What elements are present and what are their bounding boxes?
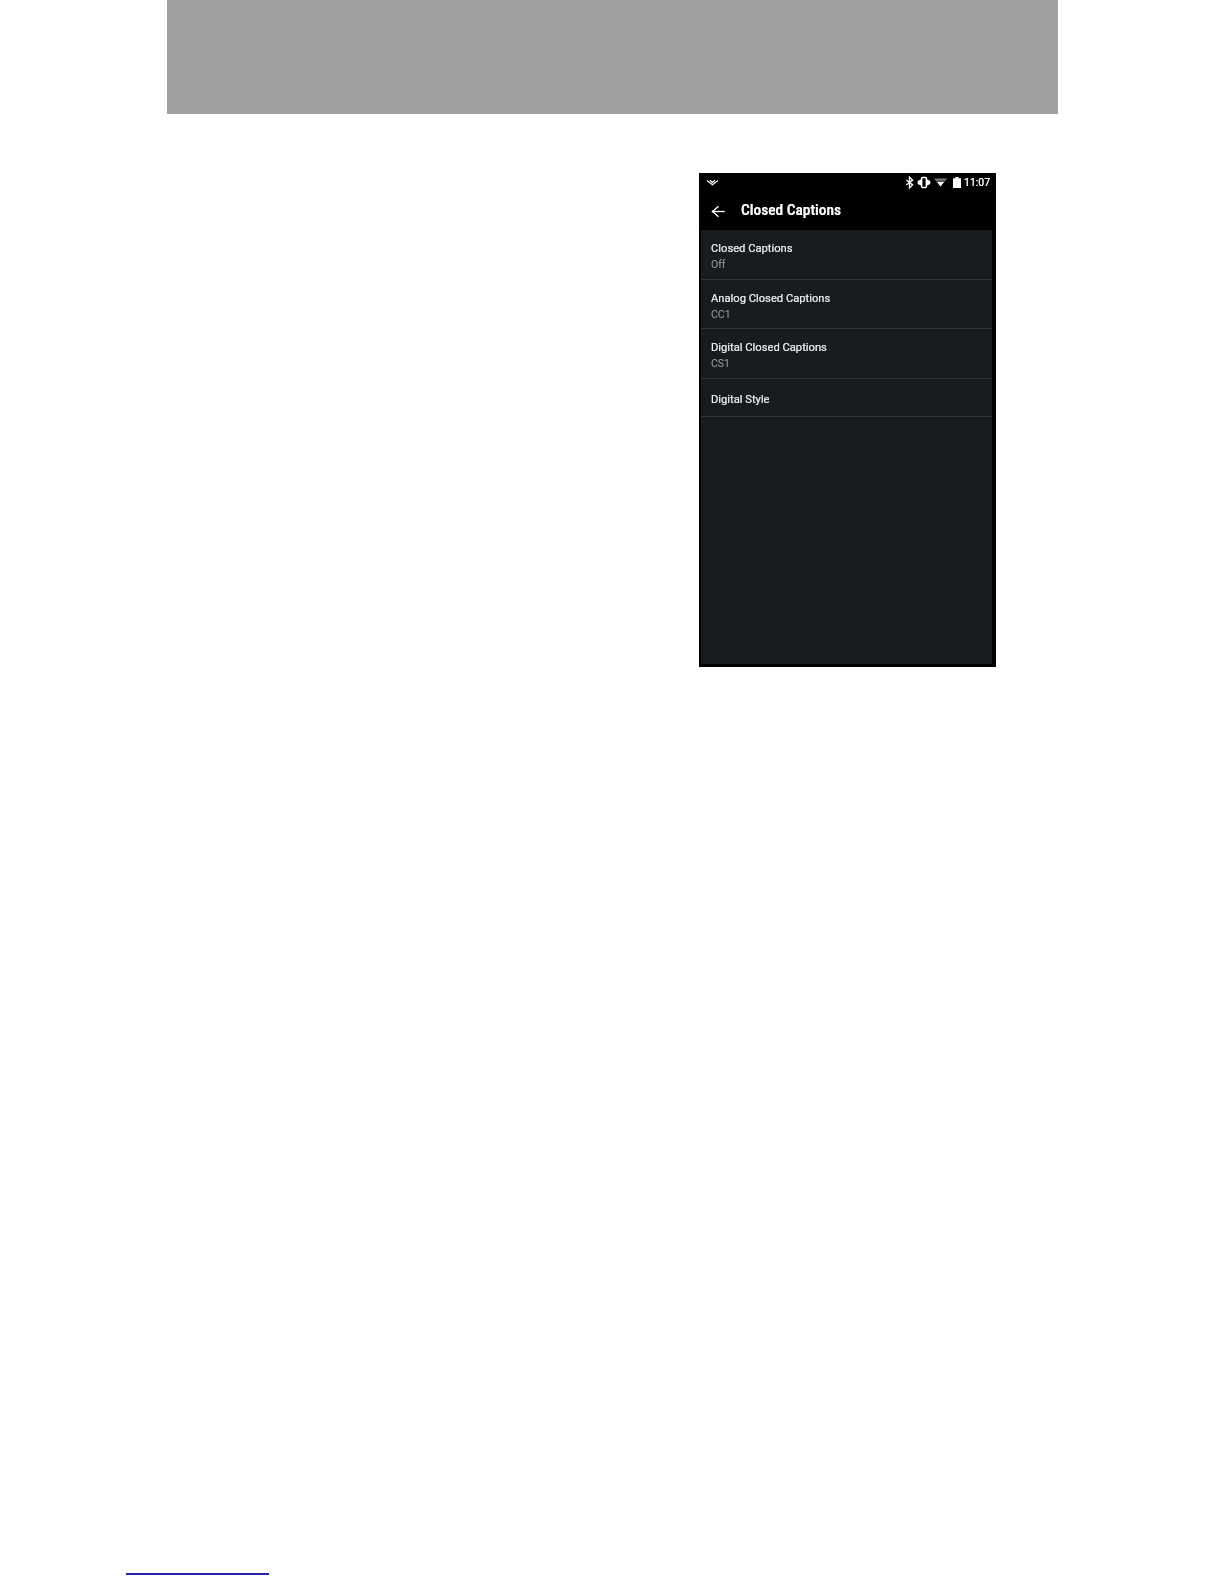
staticText: CC1 [711,308,731,320]
button[interactable]: Analog Closed Captions [701,280,992,328]
staticText: 11:07 [964,176,991,188]
button[interactable]: Back [707,200,729,222]
button[interactable]: Digital Style [701,379,992,416]
button[interactable]: Digital Closed Captions [701,329,992,378]
staticText: Analog Closed Captions [711,292,831,305]
staticText: Closed Captions [741,201,842,219]
staticText: CS1 [711,357,730,369]
staticText: Digital Style [711,393,770,406]
staticText: Off [711,258,726,270]
staticText: Closed Captions [711,242,793,255]
staticText: Digital Closed Captions [711,341,827,354]
button[interactable]: Closed Captions [701,230,992,279]
